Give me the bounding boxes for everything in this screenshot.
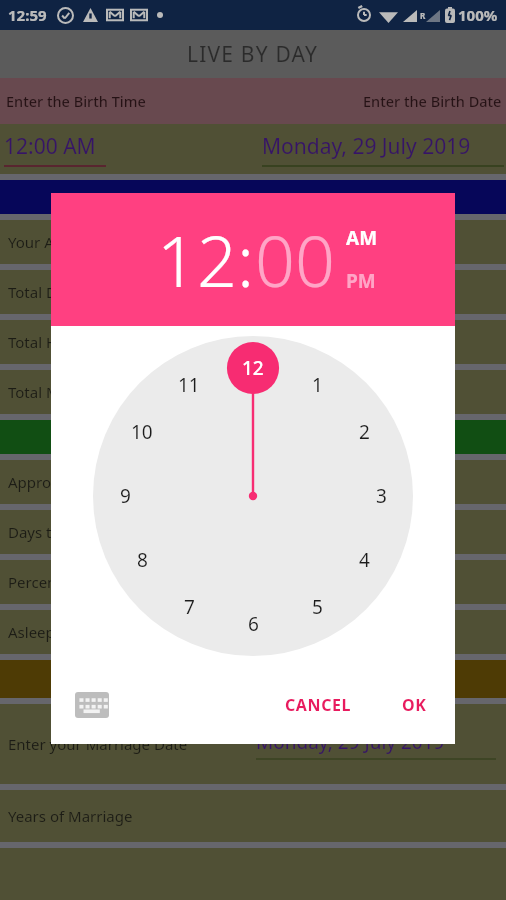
button[interactable]: 2 <box>342 410 386 454</box>
button[interactable]: PM <box>346 268 376 294</box>
button[interactable]: Total Minutes Lived <box>0 370 506 414</box>
staticText: R <box>420 10 426 21</box>
button[interactable]: Asleep Hours <box>0 610 506 654</box>
staticText: 8 <box>137 547 148 573</box>
button[interactable]: 10 <box>120 410 164 454</box>
button[interactable]: AM <box>346 225 378 251</box>
button[interactable]: Percentage of Life <box>0 560 506 604</box>
button[interactable]: Your Age <box>0 220 506 264</box>
staticText: 2 <box>359 419 370 445</box>
staticText: 3 <box>376 483 387 509</box>
staticText: Your Age <box>8 232 72 252</box>
staticText: Enter the Birth Date <box>363 91 502 111</box>
button[interactable]: 11 <box>167 363 211 407</box>
button[interactable]: 5 <box>295 585 339 629</box>
button[interactable]: Days to Next Birthday <box>0 510 506 554</box>
button[interactable]: 8 <box>120 538 164 582</box>
button[interactable]: 00 <box>255 212 335 307</box>
staticText: 12:59 <box>8 5 47 25</box>
button[interactable]: 4 <box>342 538 386 582</box>
staticText: 5 <box>312 594 323 620</box>
staticText: AM <box>346 225 378 251</box>
button[interactable]: 7 <box>167 585 211 629</box>
button[interactable]: Switch to keyboard input <box>75 692 109 718</box>
button[interactable]: Total Hours Lived <box>0 320 506 364</box>
staticText: Enter the Birth Time <box>6 91 146 111</box>
button[interactable]: CANCEL <box>273 685 364 725</box>
staticText: 7 <box>184 594 195 620</box>
staticText: Total Days Lived <box>8 282 122 302</box>
button[interactable]: Years of Marriage <box>0 790 506 842</box>
staticText: Total Minutes Lived <box>8 382 144 402</box>
button[interactable]: Approximate Breaths <box>0 460 506 504</box>
staticText: 00 <box>255 212 335 307</box>
staticText: Enter your Marriage Date <box>8 734 188 754</box>
staticText: Total Hours Lived <box>8 332 130 352</box>
button[interactable]: 6 <box>231 602 275 646</box>
staticText: Years of Marriage <box>8 806 133 826</box>
button[interactable]: 1 <box>295 363 339 407</box>
staticText: 4 <box>359 547 370 573</box>
staticText: 1 <box>312 372 323 398</box>
staticText: Percentage of Life <box>8 572 136 592</box>
staticText: PM <box>346 268 376 294</box>
staticText: 10 <box>131 419 153 445</box>
staticText: : <box>237 212 255 307</box>
staticText: 100% <box>458 5 498 25</box>
button[interactable]: 12 <box>157 212 237 307</box>
staticText: Monday, 29 July 2019 <box>256 729 445 755</box>
button[interactable]: 3 <box>359 474 403 518</box>
staticText: 9 <box>120 483 131 509</box>
staticText: Approximate Breaths <box>8 472 158 492</box>
staticText: Monday, 29 July 2019 <box>262 132 471 161</box>
staticText: LIVE BY DAY <box>187 40 319 69</box>
button[interactable]: 12 <box>231 346 275 390</box>
staticText: OK <box>402 694 427 716</box>
staticText: Asleep Hours <box>8 622 102 642</box>
staticText: 11 <box>178 372 200 398</box>
staticText: CANCEL <box>285 694 352 716</box>
staticText: 12 <box>157 212 237 307</box>
staticText: 12:00 AM <box>4 132 96 161</box>
staticText: 12 <box>242 355 264 381</box>
button[interactable]: OK <box>390 685 439 725</box>
button[interactable]: 9 <box>103 474 147 518</box>
staticText: Days to Next Birthday <box>8 522 162 542</box>
button[interactable]: Total Days Lived <box>0 270 506 314</box>
staticText: 6 <box>248 611 259 637</box>
